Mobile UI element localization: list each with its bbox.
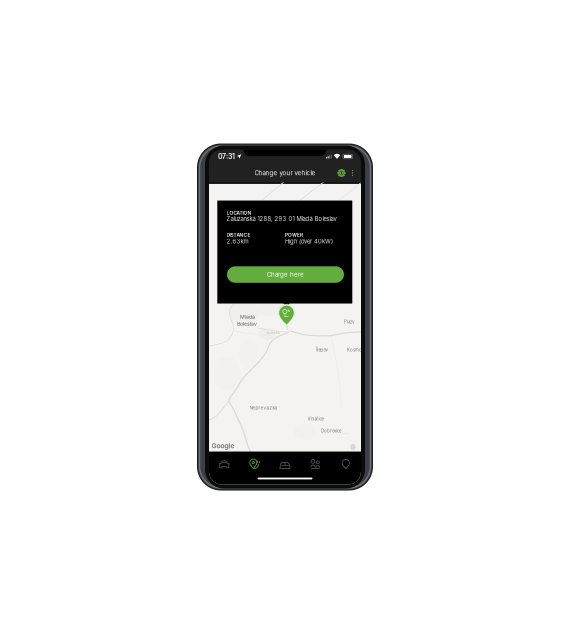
staticText: Mladá [240, 314, 255, 320]
staticText: 07:31 [218, 152, 235, 161]
staticText: 2.63km [227, 238, 249, 245]
staticText: Jičínská [266, 331, 280, 335]
button[interactable]: Charging stations [239, 455, 270, 472]
staticText: DISTANCE [227, 232, 251, 238]
staticText: Vinařice [307, 416, 323, 421]
button[interactable]: Settings [335, 163, 348, 182]
staticText: Google [211, 442, 234, 450]
staticText: Kosmono [347, 347, 368, 352]
button[interactable]: Trips [270, 455, 300, 472]
staticText: High (over 40kW) [285, 238, 333, 245]
staticText: Charge here [267, 271, 304, 278]
staticText: Change your vehicle [254, 169, 315, 177]
staticText: Řepov [315, 347, 327, 352]
button[interactable]: More options [348, 163, 357, 182]
button[interactable]: Tips [331, 455, 361, 472]
button[interactable]: Charge here [227, 266, 344, 283]
button[interactable]: My car [209, 455, 239, 472]
staticText: POWER [285, 232, 303, 238]
staticText: LOCATION [227, 210, 252, 216]
staticText: Nepřevázka [249, 405, 277, 411]
staticText: Boleslav [237, 321, 257, 327]
staticText: Zalužanská 1288, 293 01 Mladá Boleslav [227, 215, 337, 222]
button[interactable]: Account [300, 455, 331, 472]
staticText: Plazy [344, 319, 354, 324]
staticText: Dobrovice [321, 428, 341, 433]
